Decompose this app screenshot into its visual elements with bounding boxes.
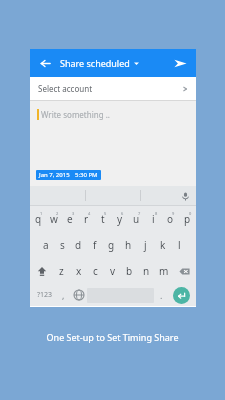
staticText: b [126, 264, 133, 278]
staticText: 4 [88, 211, 91, 216]
button[interactable]: v [104, 258, 121, 284]
staticText: 1 [40, 211, 43, 216]
staticText: e [67, 212, 73, 226]
staticText: u [133, 212, 140, 226]
staticText: Write something .. [41, 109, 110, 120]
staticText: m [159, 264, 169, 278]
button[interactable]: a [38, 232, 54, 258]
staticText: q [35, 212, 42, 226]
button[interactable]: 7 [128, 206, 145, 232]
button[interactable]: 0 [179, 206, 196, 232]
button[interactable]: Share scheduled [60, 57, 139, 69]
staticText: f [93, 238, 97, 252]
button[interactable]: f [86, 232, 103, 258]
button[interactable]: s [54, 232, 70, 258]
button[interactable]: h [120, 232, 137, 258]
button[interactable]: d [70, 232, 86, 258]
staticText: x [76, 264, 82, 278]
button[interactable]: Jan 7, 2015 [36, 170, 101, 180]
staticText: 3 [72, 211, 75, 216]
button[interactable]: Back [37, 55, 53, 71]
staticText: y [117, 212, 123, 226]
button[interactable]: 1 [30, 206, 46, 232]
button[interactable]: ?123 [33, 284, 57, 306]
staticText: r [84, 212, 89, 226]
staticText: p [184, 212, 191, 226]
button[interactable]: Select account [30, 77, 196, 100]
staticText: 9 [172, 211, 175, 216]
button[interactable]: , [57, 284, 70, 306]
button[interactable]: x [70, 258, 87, 284]
button[interactable]: 2 [46, 206, 62, 232]
staticText: 0 [189, 211, 192, 216]
staticText: n [143, 264, 150, 278]
staticText: Select account [38, 83, 93, 94]
button[interactable]: Send [171, 54, 189, 72]
button[interactable]: 4 [78, 206, 94, 232]
staticText: c [93, 264, 98, 278]
staticText: Jan 7, 2015 [39, 171, 70, 179]
button[interactable]: 3 [62, 206, 78, 232]
staticText: , [62, 289, 65, 301]
staticText: z [59, 264, 64, 278]
staticText: w [50, 212, 58, 226]
button[interactable]: c [87, 258, 104, 284]
button[interactable]: n [138, 258, 155, 284]
staticText: s [60, 238, 65, 252]
button[interactable]: b [121, 258, 138, 284]
button[interactable]: g [103, 232, 120, 258]
staticText: v [110, 264, 116, 278]
staticText: a [43, 238, 49, 252]
staticText: One Set-up to Set Timing Share [0, 331, 225, 343]
staticText: h [125, 238, 132, 252]
button[interactable]: 8 [145, 206, 162, 232]
staticText: . [160, 289, 163, 301]
staticText: o [167, 212, 174, 226]
button[interactable]: m [155, 258, 172, 284]
staticText: 5 [104, 211, 107, 216]
staticText: 2 [56, 211, 59, 216]
staticText: 8 [155, 211, 158, 216]
staticText: 6 [121, 211, 124, 216]
button[interactable]: l [171, 232, 188, 258]
button[interactable]: 6 [111, 206, 128, 232]
staticText: i [152, 212, 155, 226]
button[interactable]: . [154, 284, 169, 306]
staticText: d [75, 238, 82, 252]
staticText: Share scheduled [60, 57, 130, 69]
button[interactable]: j [137, 232, 154, 258]
button[interactable]: Change language [70, 284, 87, 306]
button[interactable]: Shift [30, 258, 53, 284]
staticText: k [160, 238, 166, 252]
staticText: g [108, 238, 115, 252]
staticText: ?123 [37, 290, 53, 300]
staticText: 7 [138, 211, 141, 216]
button[interactable]: Enter [169, 284, 193, 306]
staticText: l [178, 238, 181, 252]
button[interactable]: z [53, 258, 70, 284]
staticText: j [144, 238, 147, 252]
button[interactable]: 5 [94, 206, 111, 232]
button[interactable]: Voice input [179, 190, 191, 202]
staticText: t [101, 212, 105, 226]
button[interactable]: Backspace [172, 258, 196, 284]
button[interactable]: k [154, 232, 171, 258]
button[interactable]: 9 [162, 206, 179, 232]
staticText: 5:30 PM [75, 171, 98, 179]
